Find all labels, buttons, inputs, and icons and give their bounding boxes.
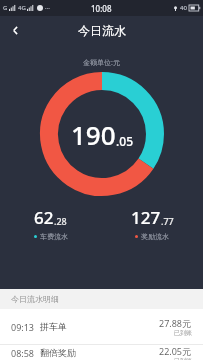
staticText: 已到账 (174, 357, 192, 360)
staticText: 翻倍奖励 (40, 347, 76, 358)
staticText: 金额单位:元 (83, 58, 120, 68)
staticText: 09:13 (11, 321, 35, 333)
staticText: 今日流水明细 (11, 294, 59, 304)
staticText: 40 (180, 4, 187, 12)
staticText: G (3, 4, 8, 12)
staticText: 奖励流水 (141, 232, 169, 241)
button[interactable]: 09:13 (0, 309, 203, 344)
staticText: 已到账 (174, 329, 192, 337)
button[interactable]: Back (0, 16, 30, 44)
staticText: .77 (161, 215, 174, 227)
staticText: 127 (131, 206, 161, 229)
staticText: 拼车单 (40, 321, 67, 332)
staticText: 10:08 (91, 3, 112, 14)
staticText: ··· (45, 4, 50, 12)
staticText: 车费流水 (40, 232, 68, 241)
staticText: 27.88元 (159, 317, 192, 329)
staticText: 190 (71, 117, 116, 152)
staticText: .05 (116, 133, 133, 149)
staticText: .28 (54, 215, 67, 227)
staticText: 08:58 (11, 347, 35, 359)
staticText: 22.05元 (159, 345, 192, 357)
staticText: 今日流水 (78, 23, 126, 38)
button[interactable]: 08:58 (0, 345, 203, 360)
staticText: 62 (34, 206, 54, 229)
staticText: 4G (18, 4, 26, 12)
